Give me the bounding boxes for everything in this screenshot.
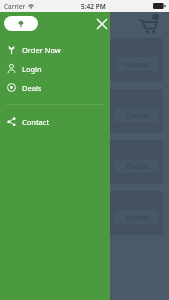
button[interactable]: Contact (0, 112, 110, 131)
staticText: Order Now (22, 45, 61, 55)
staticText: Contact (22, 117, 50, 127)
button[interactable]: Deals (0, 78, 110, 97)
staticText: Choose (126, 213, 149, 222)
staticText: Login (22, 64, 42, 74)
staticText: Carrier (4, 2, 26, 11)
button[interactable]: Choose (115, 108, 159, 122)
staticText: Choose (126, 111, 149, 120)
button[interactable]: Choose (115, 210, 159, 224)
button[interactable]: Cart (137, 14, 159, 36)
button[interactable]: Login (0, 59, 110, 78)
button[interactable]: Choose (115, 57, 159, 71)
staticText: Choose (126, 60, 149, 69)
staticText: Choose (126, 162, 149, 171)
staticText: Deals (22, 83, 42, 93)
staticText: 5:42 PM (81, 2, 106, 11)
button[interactable]: Choose (115, 159, 159, 173)
button[interactable]: Close (94, 16, 110, 32)
button[interactable] (4, 16, 38, 31)
button[interactable]: Order Now (0, 40, 110, 59)
